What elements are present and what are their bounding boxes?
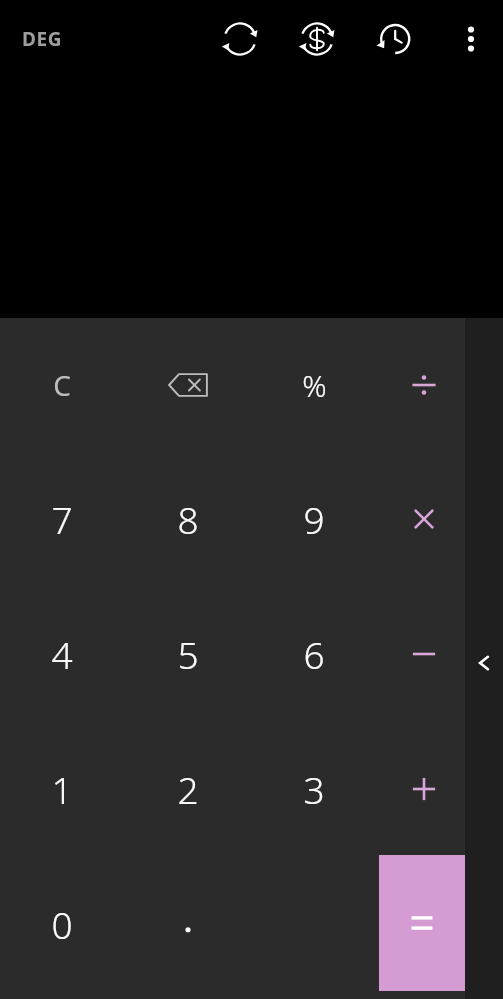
button[interactable]: 4 (6, 598, 118, 710)
staticText: 7 (51, 494, 73, 544)
button[interactable]: Decimal point (132, 868, 244, 980)
staticText: 3 (303, 764, 325, 814)
button[interactable]: Unit converter (216, 15, 264, 63)
button[interactable]: 7 (6, 463, 118, 575)
button[interactable]: 0 (6, 868, 118, 980)
button[interactable]: 9 (258, 463, 370, 575)
button[interactable]: Currency converter (293, 15, 341, 63)
button[interactable]: Plus (368, 733, 480, 845)
button[interactable]: History (370, 15, 418, 63)
button[interactable]: 6 (258, 598, 370, 710)
button[interactable]: DEG (22, 26, 63, 52)
staticText: 0 (51, 899, 73, 949)
button[interactable]: 2 (132, 733, 244, 845)
button[interactable] (379, 855, 465, 991)
button[interactable]: Multiply (368, 463, 480, 575)
button[interactable]: More options (447, 15, 495, 63)
button[interactable]: 3 (258, 733, 370, 845)
staticText: 5 (177, 629, 199, 679)
button[interactable]: 1 (6, 733, 118, 845)
staticText: % (302, 365, 327, 406)
button[interactable]: Divide (368, 329, 480, 441)
button[interactable]: Open panel (465, 318, 503, 999)
staticText: 1 (51, 764, 73, 814)
button[interactable]: 5 (132, 598, 244, 710)
staticText: 4 (51, 629, 73, 679)
staticText: C (53, 366, 71, 404)
staticText: 6 (303, 629, 325, 679)
button[interactable]: % (258, 329, 370, 441)
staticText: 2 (177, 764, 199, 814)
staticText: 9 (303, 494, 325, 544)
button[interactable]: C (6, 329, 118, 441)
staticText: DEG (22, 26, 63, 52)
staticText: 8 (177, 494, 199, 544)
button[interactable]: 8 (132, 463, 244, 575)
button[interactable]: Minus (368, 598, 480, 710)
button[interactable]: Backspace (132, 329, 244, 441)
